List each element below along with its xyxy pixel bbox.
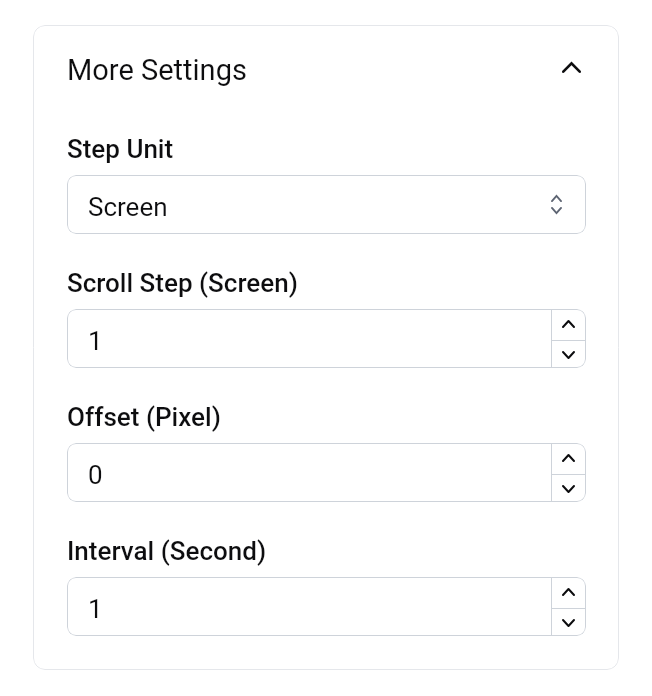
button[interactable]: Decrease xyxy=(552,609,586,636)
staticText: Screen xyxy=(88,192,168,222)
staticText: 1 xyxy=(88,594,103,624)
button[interactable]: Increase xyxy=(552,309,586,340)
button[interactable]: Increase xyxy=(552,577,586,608)
staticText: Scroll Step (Screen) xyxy=(67,268,298,298)
staticText: Offset (Pixel) xyxy=(67,402,221,432)
staticText: 0 xyxy=(88,460,103,490)
staticText: 1 xyxy=(88,326,103,356)
staticText: Step Unit xyxy=(67,134,174,164)
button[interactable]: Decrease xyxy=(552,475,586,502)
button[interactable]: Screen xyxy=(67,175,586,234)
button[interactable]: More Settings xyxy=(67,50,585,90)
other: Collapse xyxy=(562,62,581,73)
staticText: Interval (Second) xyxy=(67,536,267,566)
staticText: More Settings xyxy=(67,53,247,87)
button[interactable]: Increase xyxy=(552,443,586,474)
button[interactable]: Decrease xyxy=(552,341,586,368)
